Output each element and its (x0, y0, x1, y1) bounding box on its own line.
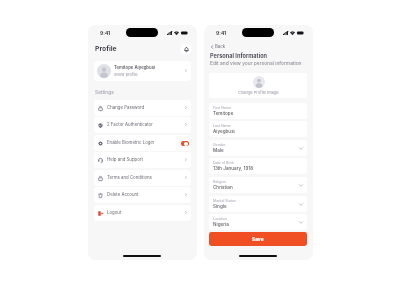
staticText: Back (215, 44, 226, 49)
staticText: Enable Biometric Login (107, 140, 155, 145)
button[interactable]: Date of Birth (209, 158, 307, 174)
button[interactable]: Back (209, 43, 228, 50)
button[interactable]: Last Name (209, 121, 307, 137)
staticText: 9:41 (216, 30, 227, 36)
button[interactable]: Change Password (94, 100, 191, 116)
button[interactable]: Help and Support (94, 152, 191, 168)
staticText: Location (213, 217, 228, 221)
button[interactable]: First Name (209, 103, 307, 119)
button[interactable]: Location (209, 214, 307, 230)
staticText: Marital Status (213, 199, 236, 203)
staticText: Change Password (107, 105, 145, 110)
button[interactable]: Gender (209, 140, 307, 156)
button[interactable]: Religion (209, 177, 307, 193)
staticText: Temitope Aiyegbusi (114, 65, 156, 70)
button[interactable]: Enable Biometric Login (94, 135, 191, 151)
staticText: Change Profile Image (238, 90, 279, 95)
button[interactable]: Change Profile Image (209, 73, 307, 98)
staticText: Nigeria (213, 222, 229, 228)
staticText: Logout (107, 210, 122, 215)
staticText: Settings (95, 89, 114, 95)
staticText: Temitope (213, 111, 234, 117)
button[interactable]: Delete Account (94, 187, 191, 203)
staticText: Last Name (213, 124, 231, 128)
staticText: 13th January, 1918 (213, 166, 254, 172)
staticText: Aiyegbusi (213, 129, 235, 135)
staticText: First Name (213, 106, 231, 110)
staticText: Single (213, 204, 227, 210)
staticText: Religion (213, 180, 227, 184)
staticText: Male (213, 148, 224, 154)
staticText: Profile (95, 44, 117, 52)
staticText: Date of Birth (213, 161, 234, 165)
button[interactable]: Save (209, 232, 307, 246)
staticText: Personal Information (210, 53, 268, 60)
button[interactable]: Terms and Conditions (94, 170, 191, 186)
staticText: Save (252, 236, 264, 242)
staticText: Edit and view your personal information (210, 60, 302, 66)
button[interactable]: Logout (94, 205, 191, 221)
staticText: 2 Factor Authenticator (107, 122, 153, 127)
button[interactable]: 2 Factor Authenticator (94, 117, 191, 133)
staticText: Show profile (114, 72, 138, 77)
staticText: Gender (213, 143, 226, 147)
staticText: Terms and Conditions (107, 175, 152, 180)
staticText: Delete Account (107, 192, 139, 197)
button[interactable]: Temitope Aiyegbusi (94, 61, 191, 81)
staticText: Help and Support (107, 157, 143, 162)
button[interactable]: Notifications (180, 43, 192, 55)
staticText: Christian (213, 185, 233, 191)
button[interactable]: Marital Status (209, 196, 307, 212)
staticText: 9:41 (100, 30, 111, 36)
